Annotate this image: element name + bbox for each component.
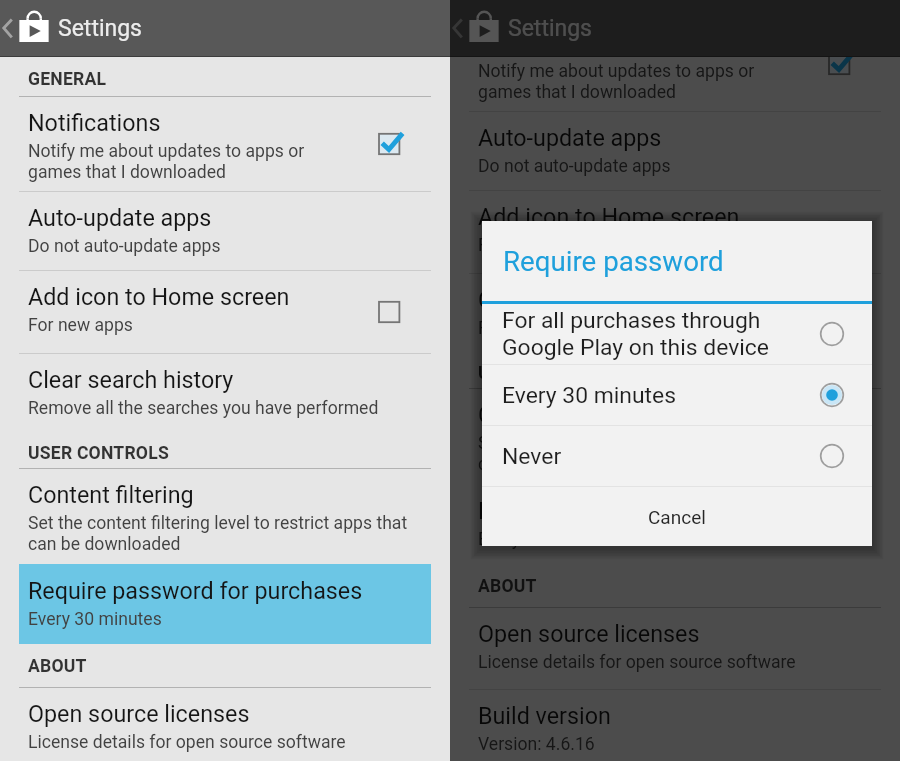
button[interactable]: Never <box>482 426 872 486</box>
staticText: ABOUT <box>28 656 87 677</box>
button[interactable]: Every 30 minutes <box>482 365 872 425</box>
staticText: Open source licenses <box>28 700 250 727</box>
button[interactable] <box>450 16 900 111</box>
button[interactable] <box>0 191 450 270</box>
button[interactable] <box>450 484 900 564</box>
staticText: Build version <box>478 702 611 729</box>
button[interactable] <box>0 270 450 354</box>
button[interactable] <box>450 689 900 761</box>
staticText: Notifications <box>28 109 161 136</box>
staticText: Open source licenses <box>478 620 700 647</box>
staticText: USER CONTROLS <box>28 443 169 464</box>
staticText: Set the content filtering level to restr… <box>28 513 408 534</box>
staticText: ABOUT <box>478 576 537 597</box>
staticText: Do not auto-update apps <box>28 236 221 257</box>
button[interactable]: Checked <box>370 96 414 191</box>
staticText: Clear search history <box>478 286 684 313</box>
staticText: Version: 4.6.16 <box>478 734 595 755</box>
staticText: For new apps <box>478 235 583 256</box>
staticText: games that I downloaded <box>28 162 226 183</box>
staticText: Require password for purchases <box>28 577 363 604</box>
staticText: Notify me about updates to apps or <box>28 141 305 162</box>
staticText: Notify me about updates to apps or <box>478 61 755 82</box>
staticText: Add icon to Home screen <box>28 283 290 310</box>
button[interactable] <box>450 190 900 274</box>
staticText: GENERAL <box>28 69 107 90</box>
button[interactable] <box>0 687 450 761</box>
staticText: Clear search history <box>28 366 234 393</box>
button[interactable] <box>450 388 900 484</box>
staticText: Every 30 minutes <box>502 382 677 409</box>
button[interactable]: Checked <box>820 16 864 111</box>
staticText: License details for open source software <box>28 732 346 753</box>
button[interactable] <box>450 607 900 690</box>
staticText: Do not auto-update apps <box>478 156 671 177</box>
staticText: Content filtering <box>28 481 194 508</box>
staticText: Auto-update apps <box>28 204 212 231</box>
staticText: Require password for purchases <box>478 497 813 524</box>
staticText: Never <box>502 443 562 470</box>
staticText: Set the content filtering level to restr… <box>478 433 858 454</box>
staticText: games that I downloaded <box>478 82 676 103</box>
button[interactable] <box>0 468 450 564</box>
staticText: For all purchases through <box>502 307 761 334</box>
button[interactable]: Navigate up <box>450 0 467 57</box>
button[interactable] <box>19 564 431 644</box>
staticText: License details for open source software <box>478 652 796 673</box>
staticText: Settings <box>508 15 592 42</box>
staticText: Settings <box>58 15 142 42</box>
staticText: Cancel <box>648 506 706 528</box>
staticText: Every 30 minutes <box>28 609 162 630</box>
staticText: Add icon to Home screen <box>478 203 740 230</box>
button[interactable]: Unchecked <box>820 190 864 274</box>
staticText: Remove all the searches you have perform… <box>28 398 379 419</box>
staticText: Content filtering <box>478 401 644 428</box>
staticText: can be downloaded <box>478 454 631 475</box>
button[interactable] <box>0 96 450 191</box>
staticText: Remove all the searches you have perform… <box>478 318 829 339</box>
staticText: can be downloaded <box>28 534 181 555</box>
staticText: Google Play on this device <box>502 334 769 361</box>
button[interactable]: For all purchases through <box>482 304 872 364</box>
staticText: Require password <box>503 245 724 277</box>
button[interactable] <box>450 273 900 349</box>
button[interactable]: Navigate up <box>0 0 17 57</box>
button[interactable]: Unchecked <box>370 270 414 354</box>
button[interactable] <box>450 111 900 190</box>
button[interactable]: Cancel <box>482 487 872 546</box>
staticText: For new apps <box>28 315 133 336</box>
staticText: USER CONTROLS <box>478 363 619 384</box>
staticText: Every 30 minutes <box>478 529 612 550</box>
staticText: Auto-update apps <box>478 124 662 151</box>
button[interactable] <box>0 353 450 429</box>
staticText: Notifications <box>478 29 611 56</box>
